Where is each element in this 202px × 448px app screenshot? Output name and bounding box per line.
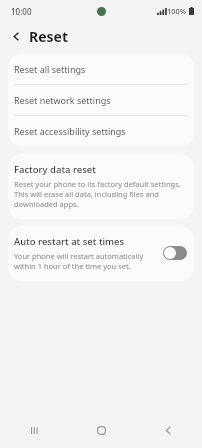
staticText: Reset accessibility settings bbox=[14, 125, 126, 137]
button[interactable]: Back bbox=[6, 26, 26, 46]
button[interactable]: Back bbox=[135, 412, 202, 448]
button[interactable]: Auto restart at set times toggle bbox=[163, 246, 187, 260]
staticText: Your phone will restart automatically wi… bbox=[14, 251, 159, 271]
staticText: Reset all settings bbox=[14, 63, 86, 75]
staticText: Auto restart at set times bbox=[14, 235, 125, 248]
button[interactable]: Auto restart at set times bbox=[8, 226, 194, 281]
staticText: Factory data reset bbox=[14, 163, 96, 176]
button[interactable]: Reset all settings bbox=[8, 54, 194, 84]
staticText: Reset network settings bbox=[14, 94, 111, 106]
staticText: Reset bbox=[29, 27, 69, 46]
button[interactable]: Factory data reset bbox=[8, 154, 194, 219]
button[interactable]: Recent apps bbox=[0, 412, 68, 448]
button[interactable]: Home bbox=[68, 412, 135, 448]
staticText: Reset your phone to its factory default … bbox=[14, 179, 186, 209]
staticText: 100% bbox=[167, 6, 187, 16]
staticText: 10:00 bbox=[11, 6, 32, 17]
button[interactable]: Reset accessibility settings bbox=[8, 116, 194, 146]
button[interactable]: Reset network settings bbox=[8, 85, 194, 115]
